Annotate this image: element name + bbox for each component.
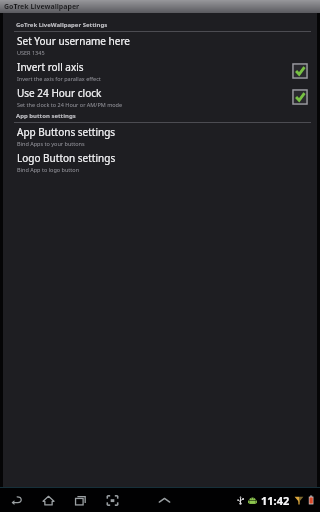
staticText: Invert roll axis bbox=[17, 60, 84, 74]
staticText: 11:42 bbox=[261, 493, 290, 508]
button[interactable]: Home bbox=[32, 488, 64, 512]
staticText: GoTrek LiveWallpaper Settings bbox=[16, 21, 108, 29]
staticText: Logo Button settings bbox=[17, 151, 116, 165]
other: Android system notification bbox=[248, 496, 257, 505]
button[interactable]: Invert roll axis bbox=[3, 58, 317, 84]
staticText: Set the clock to 24 Hour or AM/PM mode bbox=[17, 101, 123, 108]
staticText: GoTrek Livewallpaper bbox=[4, 2, 80, 12]
other: Wi-Fi signal bbox=[294, 495, 304, 505]
staticText: Bind App to logo button bbox=[17, 166, 80, 173]
button[interactable]: USB connected bbox=[236, 488, 320, 512]
button[interactable]: Set Your username here bbox=[3, 32, 317, 58]
staticText: Set Your username here bbox=[17, 34, 130, 48]
staticText: USER 1345 bbox=[17, 49, 45, 56]
other: Battery level bbox=[306, 495, 316, 505]
other: USB connected bbox=[236, 496, 245, 505]
button[interactable]: Toggle option bbox=[292, 89, 308, 105]
staticText: App button settings bbox=[16, 112, 76, 120]
staticText: App Buttons settings bbox=[17, 125, 116, 139]
staticText: Invert the axis for parallax effect bbox=[17, 75, 101, 82]
button[interactable]: Screenshot bbox=[96, 488, 128, 512]
button[interactable]: Back bbox=[0, 488, 32, 512]
staticText: Use 24 Hour clock bbox=[17, 86, 102, 100]
button[interactable]: Toggle option bbox=[292, 63, 308, 79]
button[interactable]: App Buttons settings bbox=[3, 123, 317, 149]
button[interactable]: Use 24 Hour clock bbox=[3, 84, 317, 110]
button[interactable]: Show navigation bbox=[148, 488, 180, 512]
staticText: Bind Apps to your buttons bbox=[17, 140, 85, 147]
button[interactable]: Logo Button settings bbox=[3, 149, 317, 175]
button[interactable]: Recent apps bbox=[64, 488, 96, 512]
